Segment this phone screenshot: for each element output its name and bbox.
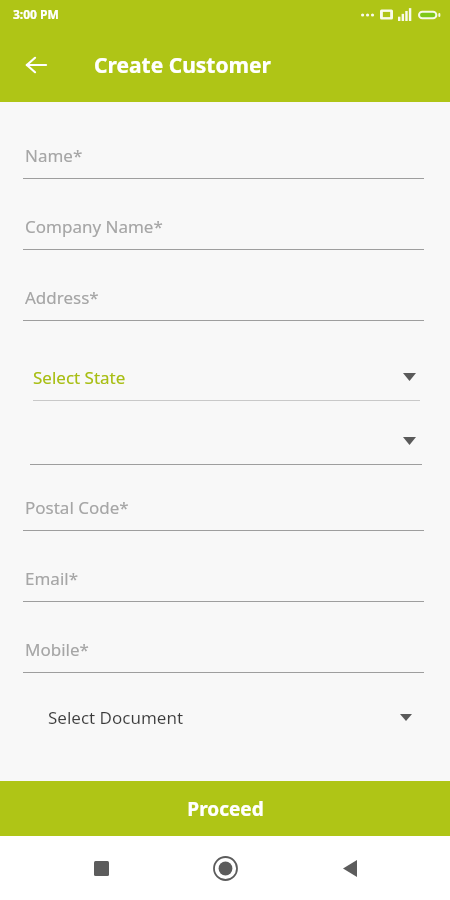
staticText: Mobile* <box>25 638 89 661</box>
button[interactable]: Company Name* <box>0 179 450 250</box>
staticText: Name* <box>25 144 83 167</box>
button[interactable]: Select State <box>0 321 450 401</box>
button[interactable]: Proceed <box>0 781 450 836</box>
button[interactable]: Email* <box>0 531 450 602</box>
staticText: Company Name* <box>25 215 163 238</box>
staticText: Select State <box>33 366 126 389</box>
staticText: Email* <box>25 567 79 590</box>
staticText: 3:00 PM <box>13 6 59 22</box>
staticText: Select Document <box>48 706 184 729</box>
button[interactable]: Select Document <box>0 702 450 732</box>
staticText: Create Customer <box>94 51 271 80</box>
button[interactable]: Home <box>201 844 249 892</box>
button[interactable] <box>0 401 450 465</box>
staticText: Address* <box>25 286 99 309</box>
button[interactable]: Mobile* <box>0 602 450 673</box>
button[interactable]: Name* <box>0 102 450 179</box>
button[interactable]: Back <box>326 844 374 892</box>
button[interactable]: Postal Code* <box>0 465 450 531</box>
staticText: Proceed <box>187 796 264 822</box>
button[interactable]: Address* <box>0 250 450 321</box>
staticText: Postal Code* <box>25 496 129 519</box>
button[interactable]: Back <box>13 42 59 88</box>
button[interactable]: Recent apps <box>77 844 125 892</box>
